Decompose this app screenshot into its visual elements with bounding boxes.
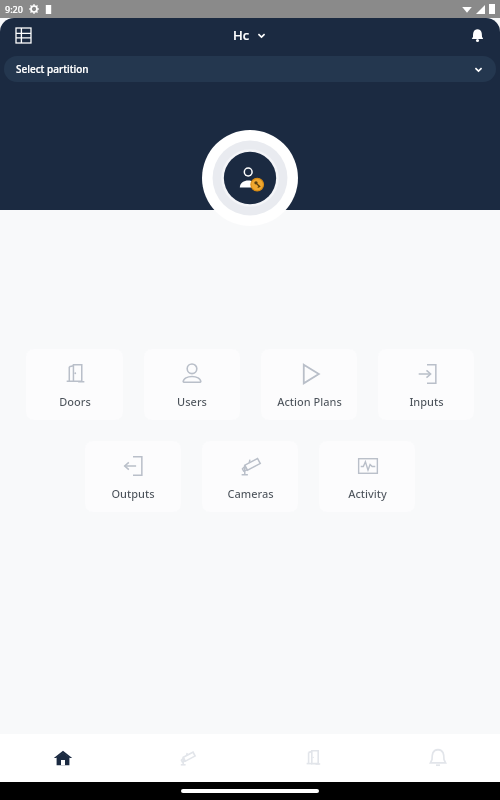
button[interactable]: Menu [8,20,38,50]
staticText: Hc [233,26,250,44]
staticText: Cameras [227,486,274,501]
button[interactable]: Cameras [202,441,298,512]
staticText: Select partition [16,62,89,76]
staticText: Activity [348,486,387,501]
button[interactable]: Activity [319,441,415,512]
staticText: Inputs [409,394,444,409]
button[interactable]: Profile [202,130,298,226]
button[interactable]: Outputs [85,441,181,512]
staticText: Doors [59,394,91,409]
button[interactable]: Action Plans [261,349,357,420]
button[interactable]: Alerts [375,734,500,782]
button[interactable]: Home [0,734,125,782]
button[interactable]: Doors [26,349,123,420]
button[interactable]: Users [144,349,240,420]
staticText: Action Plans [277,394,342,409]
button[interactable]: Doors [250,734,375,782]
staticText: Users [177,394,207,409]
button[interactable]: Notifications [462,20,492,50]
button[interactable]: Inputs [378,349,474,420]
staticText: 9:20 [5,3,23,15]
button[interactable]: Select partition [4,56,496,82]
staticText: Outputs [111,486,155,501]
button[interactable]: Hc [227,24,273,46]
